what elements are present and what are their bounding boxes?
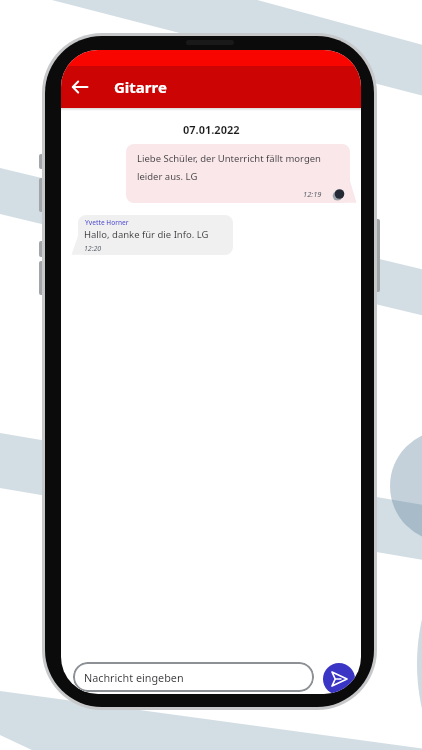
button[interactable] <box>78 215 233 255</box>
staticText: 12:20 <box>84 244 102 254</box>
staticText: Hallo, danke für die Info. LG <box>84 228 209 241</box>
staticText: Yvette Horner <box>85 218 129 227</box>
button[interactable] <box>323 663 355 694</box>
button[interactable] <box>126 144 350 203</box>
button[interactable] <box>65 72 95 102</box>
staticText: 07.01.2022 <box>183 122 240 137</box>
staticText: 12:19 <box>303 189 322 199</box>
button[interactable]: Nachricht eingeben <box>73 662 314 692</box>
staticText: Gitarre <box>114 77 167 97</box>
staticText: leider aus. LG <box>137 170 198 183</box>
staticText: Liebe Schüler, der Unterricht fällt morg… <box>137 152 321 165</box>
staticText: Nachricht eingeben <box>84 670 184 685</box>
